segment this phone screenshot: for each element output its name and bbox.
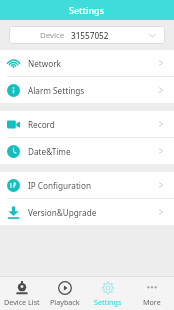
button[interactable]: Date&Time bbox=[0, 138, 174, 164]
staticText: More bbox=[143, 297, 161, 307]
staticText: Version&Upgrade bbox=[28, 207, 156, 218]
button[interactable]: Playback bbox=[43, 277, 86, 310]
staticText: Record bbox=[28, 119, 156, 130]
staticText: Playback bbox=[50, 297, 80, 307]
staticText: Device List bbox=[4, 297, 40, 307]
button[interactable]: Device List bbox=[0, 277, 43, 310]
button[interactable]: Record bbox=[0, 111, 174, 137]
staticText: IP Configuration bbox=[28, 180, 156, 191]
staticText: 31557052 bbox=[71, 30, 109, 41]
button[interactable]: Alarm Settings bbox=[0, 77, 174, 103]
staticText: Network bbox=[28, 58, 156, 69]
button[interactable]: Network bbox=[0, 50, 174, 76]
button[interactable]: Settings bbox=[86, 277, 130, 310]
staticText: Alarm Settings bbox=[28, 85, 156, 96]
button[interactable]: More bbox=[130, 277, 174, 310]
staticText: Settings bbox=[69, 4, 105, 16]
staticText: Settings bbox=[94, 297, 122, 307]
staticText: Device bbox=[40, 30, 65, 41]
staticText: Date&Time bbox=[28, 146, 156, 157]
button[interactable]: Device bbox=[9, 26, 165, 44]
button[interactable]: IP Configuration bbox=[0, 172, 174, 198]
button[interactable]: Version&Upgrade bbox=[0, 199, 174, 225]
